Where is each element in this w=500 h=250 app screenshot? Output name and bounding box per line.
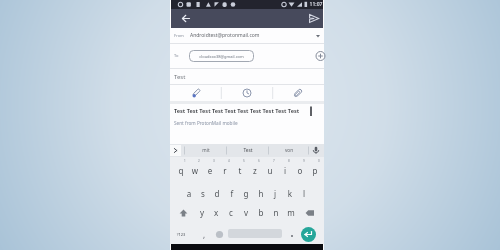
button[interactable] [176, 207, 191, 219]
button[interactable]: von [269, 144, 309, 157]
staticText: 9 [303, 159, 311, 163]
button[interactable]: c [224, 207, 238, 219]
button[interactable] [214, 228, 225, 241]
staticText: o [293, 165, 307, 176]
button[interactable]: y [195, 207, 209, 219]
button[interactable]: q [174, 165, 188, 177]
staticText: d [210, 188, 224, 199]
button[interactable] [309, 144, 324, 157]
button[interactable]: u [263, 165, 277, 177]
button[interactable]: ?123 [173, 228, 189, 241]
button[interactable]: , [198, 226, 210, 241]
staticText: x [209, 207, 223, 218]
staticText: j [268, 188, 282, 199]
button[interactable]: x [209, 207, 223, 219]
button[interactable]: cloudxxx38@gmail.com [189, 50, 254, 62]
staticText: Androidtest@protonmail.com [190, 32, 290, 39]
staticText: t [233, 165, 247, 176]
staticText: Sent from ProtonMail mobile [174, 120, 294, 126]
staticText: 4 [228, 159, 236, 163]
staticText: n [269, 207, 283, 218]
button[interactable]: f [225, 188, 239, 200]
staticText: 3 [213, 159, 221, 163]
staticText: 0 [318, 159, 326, 163]
button[interactable]: z [248, 165, 262, 177]
button[interactable] [273, 85, 324, 101]
button[interactable] [222, 85, 273, 101]
staticText: h [254, 188, 268, 199]
staticText: To [174, 53, 188, 58]
staticText: a [182, 188, 196, 199]
button[interactable]: i [278, 165, 292, 177]
staticText: f [225, 188, 239, 199]
staticText: p [308, 165, 322, 176]
button[interactable]: d [210, 188, 224, 200]
staticText: 5 [243, 159, 251, 163]
button[interactable] [301, 227, 316, 242]
button[interactable]: m [284, 207, 298, 219]
staticText: q [174, 165, 188, 176]
button[interactable]: s [196, 188, 210, 200]
staticText: 8 [288, 159, 296, 163]
button[interactable]: To [170, 44, 324, 69]
staticText: cloudxxx38@gmail.com [189, 54, 254, 59]
staticText: w [188, 165, 202, 176]
staticText: z [248, 165, 262, 176]
staticText: k [283, 188, 297, 199]
button[interactable]: t [233, 165, 247, 177]
staticText: mit [185, 147, 227, 153]
staticText: von [269, 147, 309, 153]
staticText: , [198, 229, 210, 240]
staticText: ?123 [173, 232, 189, 237]
button[interactable]: Test [170, 69, 324, 85]
staticText: s [196, 188, 210, 199]
staticText: Test [174, 73, 214, 81]
button[interactable] [171, 9, 201, 28]
button[interactable]: r [218, 165, 232, 177]
staticText: r [218, 165, 232, 176]
staticText: b [254, 207, 268, 218]
staticText: Test [227, 147, 269, 153]
button[interactable]: g [239, 188, 253, 200]
button[interactable]: From [170, 28, 324, 44]
button[interactable]: Test [227, 144, 269, 157]
staticText: c [224, 207, 238, 218]
button[interactable]: n [269, 207, 283, 219]
button[interactable]: k [283, 188, 297, 200]
button[interactable]: w [188, 165, 202, 177]
button[interactable]: o [293, 165, 307, 177]
staticText: l [297, 188, 311, 199]
staticText: From [174, 33, 194, 38]
staticText: i [278, 165, 292, 176]
button[interactable]: Test Test Test Test Test Test Test Test … [170, 104, 324, 144]
button[interactable]: a [182, 188, 196, 200]
button[interactable] [301, 207, 317, 219]
button[interactable]: l [297, 188, 311, 200]
staticText: 7 [273, 159, 281, 163]
staticText: 2 [198, 159, 206, 163]
staticText: 11:07 [307, 1, 325, 8]
button[interactable]: h [254, 188, 268, 200]
button[interactable] [170, 85, 222, 101]
staticText: Test Test Test Test Test Test Test Test … [174, 107, 320, 114]
staticText: g [239, 188, 253, 199]
staticText: m [284, 207, 298, 218]
staticText: u [263, 165, 277, 176]
button[interactable]: j [268, 188, 282, 200]
button[interactable]: b [254, 207, 268, 219]
button[interactable]: mit [185, 144, 227, 157]
staticText: e [203, 165, 217, 176]
staticText: v [239, 207, 253, 218]
button[interactable]: p [308, 165, 322, 177]
staticText: 6 [258, 159, 266, 163]
button[interactable]: v [239, 207, 253, 219]
staticText: y [195, 207, 209, 218]
staticText: 1 [184, 159, 192, 163]
button[interactable]: e [203, 165, 217, 177]
button[interactable] [301, 9, 325, 28]
button[interactable] [170, 145, 181, 156]
